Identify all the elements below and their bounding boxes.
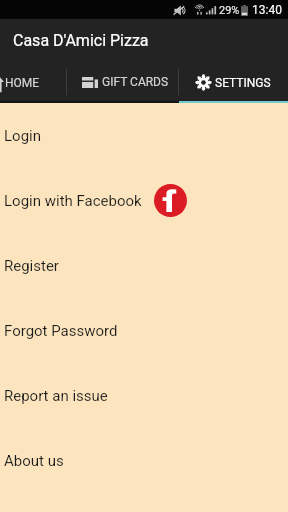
button[interactable]: SETTINGS [179,61,288,103]
button[interactable]: Register [0,233,288,298]
staticText: HOME [5,76,40,90]
staticText: Casa D'Amici Pizza [13,31,149,50]
staticText: SETTINGS [215,76,271,90]
button[interactable]: About us [0,428,288,493]
staticText: Login [4,127,41,145]
staticText: 29% [219,4,240,17]
staticText: GIFT CARDS [102,75,169,89]
staticText: Forgot Password [4,322,118,340]
button[interactable]: Login with Facebook [0,168,288,233]
button[interactable]: GIFT CARDS [67,61,178,103]
staticText: Register [4,257,59,275]
staticText: Report an issue [4,387,108,405]
button[interactable]: HOME [0,61,66,103]
staticText: Login with Facebook [4,192,142,210]
staticText: About us [4,452,64,470]
button[interactable]: Forgot Password [0,298,288,363]
button[interactable]: Report an issue [0,363,288,428]
button[interactable]: Login [0,103,288,168]
button[interactable]: Login with Facebook [154,184,187,217]
staticText: 13:40 [252,3,282,17]
